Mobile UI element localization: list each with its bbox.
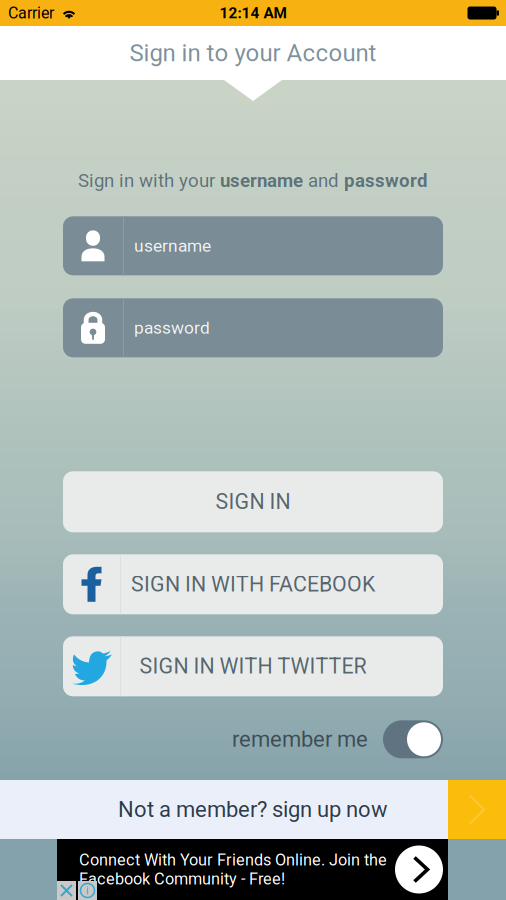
staticText: SIGN IN (215, 489, 290, 514)
staticText: Sign in to your Account (129, 39, 376, 67)
staticText: Connect With Your Friends Online. Join t… (79, 850, 387, 888)
button[interactable]: SIGN IN (63, 471, 443, 532)
staticText: password (134, 318, 210, 338)
button[interactable]: remember me (63, 718, 443, 760)
staticText: SIGN IN WITH FACEBOOK (131, 572, 375, 597)
button[interactable]: username (63, 216, 443, 275)
staticText: 12:14 AM (219, 4, 286, 22)
staticText: Not a member? sign up now (118, 797, 388, 822)
staticText: username (134, 236, 211, 256)
staticText: Sign in with your username and password (78, 170, 428, 191)
staticText: Carrier (8, 4, 54, 22)
button[interactable]: SIGN IN WITH TWITTER (63, 636, 443, 696)
staticText: remember me (232, 726, 368, 752)
button[interactable]: password (63, 298, 443, 357)
button[interactable]: SIGN IN WITH FACEBOOK (63, 554, 443, 614)
button[interactable]: Not a member? sign up now (0, 780, 506, 839)
staticText: i (86, 884, 89, 897)
staticText: SIGN IN WITH TWITTER (139, 654, 366, 679)
